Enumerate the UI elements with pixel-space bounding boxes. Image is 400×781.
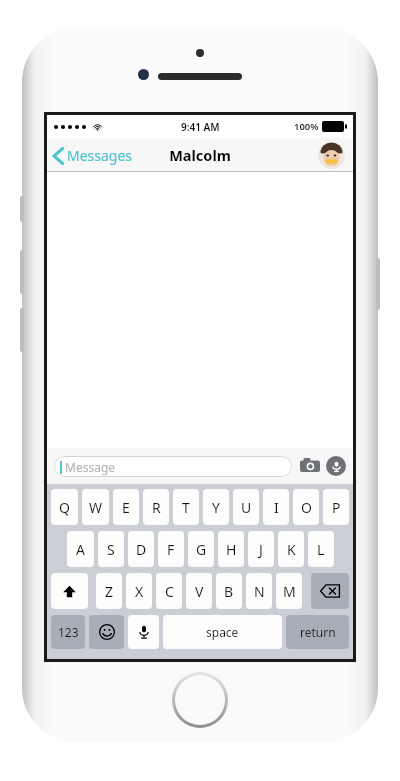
staticText: P	[332, 498, 341, 517]
staticText: U	[241, 498, 252, 517]
staticText: X	[135, 582, 144, 601]
button[interactable]: X	[126, 573, 152, 609]
staticText: G	[196, 540, 207, 559]
staticText: R	[152, 498, 161, 517]
staticText: space	[206, 624, 239, 640]
staticText: L	[317, 540, 325, 559]
button[interactable]: Shift	[51, 573, 88, 609]
staticText: V	[195, 582, 204, 601]
staticText: Message	[65, 459, 116, 475]
staticText: S	[107, 540, 115, 559]
button[interactable]: R	[143, 489, 169, 525]
button[interactable]: C	[156, 573, 182, 609]
button[interactable]: D	[128, 531, 154, 567]
staticText: Z	[105, 582, 114, 601]
button[interactable]: Y	[203, 489, 229, 525]
button[interactable]: Emoji	[89, 615, 124, 649]
button[interactable]: N	[246, 573, 272, 609]
button[interactable]: P	[323, 489, 349, 525]
button[interactable]: J	[248, 531, 274, 567]
button[interactable]: Messages	[53, 146, 133, 165]
staticText: O	[301, 498, 312, 517]
staticText: Messages	[67, 146, 133, 165]
staticText: A	[76, 540, 85, 559]
button[interactable]: W	[82, 489, 109, 525]
button[interactable]: M	[276, 573, 302, 609]
staticText: N	[254, 582, 265, 601]
staticText: Y	[212, 498, 220, 517]
staticText: M	[283, 582, 296, 601]
button[interactable]: Z	[96, 573, 122, 609]
staticText: F	[167, 540, 175, 559]
button[interactable]: Record audio	[326, 456, 346, 476]
button[interactable]: space	[163, 615, 282, 649]
button[interactable]: A	[67, 531, 94, 567]
button[interactable]: Q	[51, 489, 78, 525]
button[interactable]: Message	[54, 456, 292, 477]
button[interactable]: F	[158, 531, 184, 567]
button[interactable]: return	[286, 615, 349, 649]
button[interactable]: T	[173, 489, 199, 525]
staticText: E	[122, 498, 130, 517]
staticText: 123	[58, 624, 79, 640]
button[interactable]: S	[98, 531, 124, 567]
staticText: J	[259, 540, 263, 559]
button[interactable]: V	[186, 573, 212, 609]
staticText: T	[182, 498, 190, 517]
button[interactable]: E	[113, 489, 139, 525]
staticText: B	[224, 582, 234, 601]
staticText: Malcolm	[169, 145, 231, 165]
button[interactable]: Contact photo	[318, 142, 345, 169]
button[interactable]: Dictation	[128, 615, 159, 649]
staticText: C	[165, 582, 174, 601]
button[interactable]: H	[218, 531, 244, 567]
button[interactable]: I	[263, 489, 289, 525]
staticText: K	[287, 540, 296, 559]
button[interactable]: L	[308, 531, 334, 567]
staticText: return	[300, 624, 336, 640]
staticText: Q	[59, 498, 70, 517]
button[interactable]: Camera	[300, 456, 320, 476]
button[interactable]: B	[216, 573, 242, 609]
staticText: I	[274, 498, 279, 517]
button[interactable]: O	[293, 489, 319, 525]
button[interactable]: G	[188, 531, 214, 567]
staticText: 9:41 AM	[181, 120, 220, 134]
staticText: D	[136, 540, 147, 559]
button[interactable]: 123	[51, 615, 85, 649]
button[interactable]: K	[278, 531, 304, 567]
button[interactable]: U	[233, 489, 259, 525]
button[interactable]: Backspace	[311, 573, 349, 609]
staticText: 100%	[294, 120, 319, 133]
button[interactable]: Home	[172, 672, 228, 728]
staticText: H	[226, 540, 237, 559]
staticText: W	[89, 498, 103, 517]
